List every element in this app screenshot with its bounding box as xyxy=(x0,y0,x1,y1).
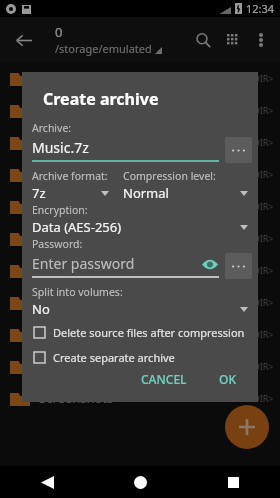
staticText: Ringtones xyxy=(39,357,101,375)
button[interactable]: Browse xyxy=(225,137,252,163)
button[interactable]: DCIM xyxy=(0,126,280,158)
staticText: OK xyxy=(219,371,236,387)
staticText: <DIR> xyxy=(248,264,274,276)
button[interactable]: Back xyxy=(8,25,38,55)
button[interactable]: Pictures xyxy=(0,286,280,318)
staticText: CANCEL xyxy=(141,371,187,387)
staticText: <DIR> xyxy=(248,136,274,148)
button[interactable]: Alarms xyxy=(0,62,280,94)
staticText: Podcasts xyxy=(39,325,94,343)
staticText: Music xyxy=(39,229,75,247)
button[interactable]: Create separate archive xyxy=(34,350,250,365)
button[interactable]: Movies xyxy=(0,190,280,222)
staticText: 7z xyxy=(32,184,46,202)
staticText: Movies xyxy=(39,197,82,215)
staticText: Compression level: xyxy=(123,169,216,183)
button[interactable]: Normal xyxy=(123,183,248,203)
staticText: <DIR> xyxy=(248,296,274,308)
button[interactable]: Data (AES-256) xyxy=(32,217,248,237)
staticText: Password: xyxy=(32,237,83,251)
staticText: <DIR> xyxy=(248,168,274,180)
staticText: Delete source files after compression xyxy=(53,325,245,340)
staticText: <DIR> xyxy=(248,72,274,84)
staticText: Archive: xyxy=(32,121,72,135)
button[interactable]: CANCEL xyxy=(133,366,195,392)
button[interactable]: 7z xyxy=(32,183,109,203)
staticText: Create archive xyxy=(43,88,159,110)
staticText: No xyxy=(32,300,50,318)
staticText: Archive format: xyxy=(32,169,108,183)
button[interactable]: Android xyxy=(0,94,280,126)
staticText: <DIR> xyxy=(248,360,274,372)
staticText: Screenshots xyxy=(39,389,114,407)
button[interactable]: Podcasts xyxy=(0,318,280,350)
button[interactable]: OK xyxy=(211,366,244,392)
button[interactable]: More options xyxy=(248,27,274,53)
button[interactable]: Add xyxy=(225,405,269,449)
staticText: Android xyxy=(39,101,88,119)
staticText: Notifications xyxy=(39,261,117,279)
button[interactable]: Home xyxy=(94,466,187,498)
button[interactable]: Music xyxy=(0,222,280,254)
staticText: /storage/emulated xyxy=(55,41,152,56)
staticText: Music.7z xyxy=(32,138,89,157)
staticText: <DIR> xyxy=(248,232,274,244)
staticText: Alarms xyxy=(39,69,82,87)
button[interactable]: Notifications xyxy=(0,254,280,286)
button[interactable]: Delete source files after compression xyxy=(34,325,250,340)
button[interactable]: Browse xyxy=(225,253,252,279)
staticText: Enter password xyxy=(32,254,201,273)
staticText: <DIR> xyxy=(248,200,274,212)
button[interactable]: Screenshots xyxy=(0,382,280,414)
button[interactable]: Ringtones xyxy=(0,350,280,382)
button[interactable]: Recents xyxy=(187,466,280,498)
staticText: <DIR> xyxy=(248,104,274,116)
staticText: <DIR> xyxy=(248,392,274,404)
button[interactable]: No xyxy=(32,299,248,319)
button[interactable]: Apps grid xyxy=(218,25,248,55)
staticText: <DIR> xyxy=(248,328,274,340)
staticText: 0 xyxy=(55,23,63,41)
staticText: Split into volumes: xyxy=(32,285,123,299)
staticText: Create separate archive xyxy=(53,350,175,365)
button[interactable]: Enter password xyxy=(32,254,219,278)
button[interactable]: Music.7z xyxy=(32,138,219,162)
staticText: DCIM xyxy=(39,133,73,151)
staticText: Encryption: xyxy=(32,203,88,217)
staticText: Normal xyxy=(123,184,169,202)
staticText: Data (AES-256) xyxy=(32,218,122,236)
button[interactable]: Search xyxy=(188,25,218,55)
staticText: Download xyxy=(39,165,101,183)
button[interactable]: Download xyxy=(0,158,280,190)
staticText: Pictures xyxy=(39,293,88,311)
staticText: 12:34 xyxy=(246,1,275,16)
button[interactable]: Show password xyxy=(201,255,219,273)
button[interactable]: Back xyxy=(0,466,94,498)
